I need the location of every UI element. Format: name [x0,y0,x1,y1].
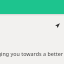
staticText: Nudging you towards a better life [0,50,64,57]
button[interactable]: Nudging you towards a better life [0,49,64,57]
button[interactable]: Pointer [55,23,60,28]
